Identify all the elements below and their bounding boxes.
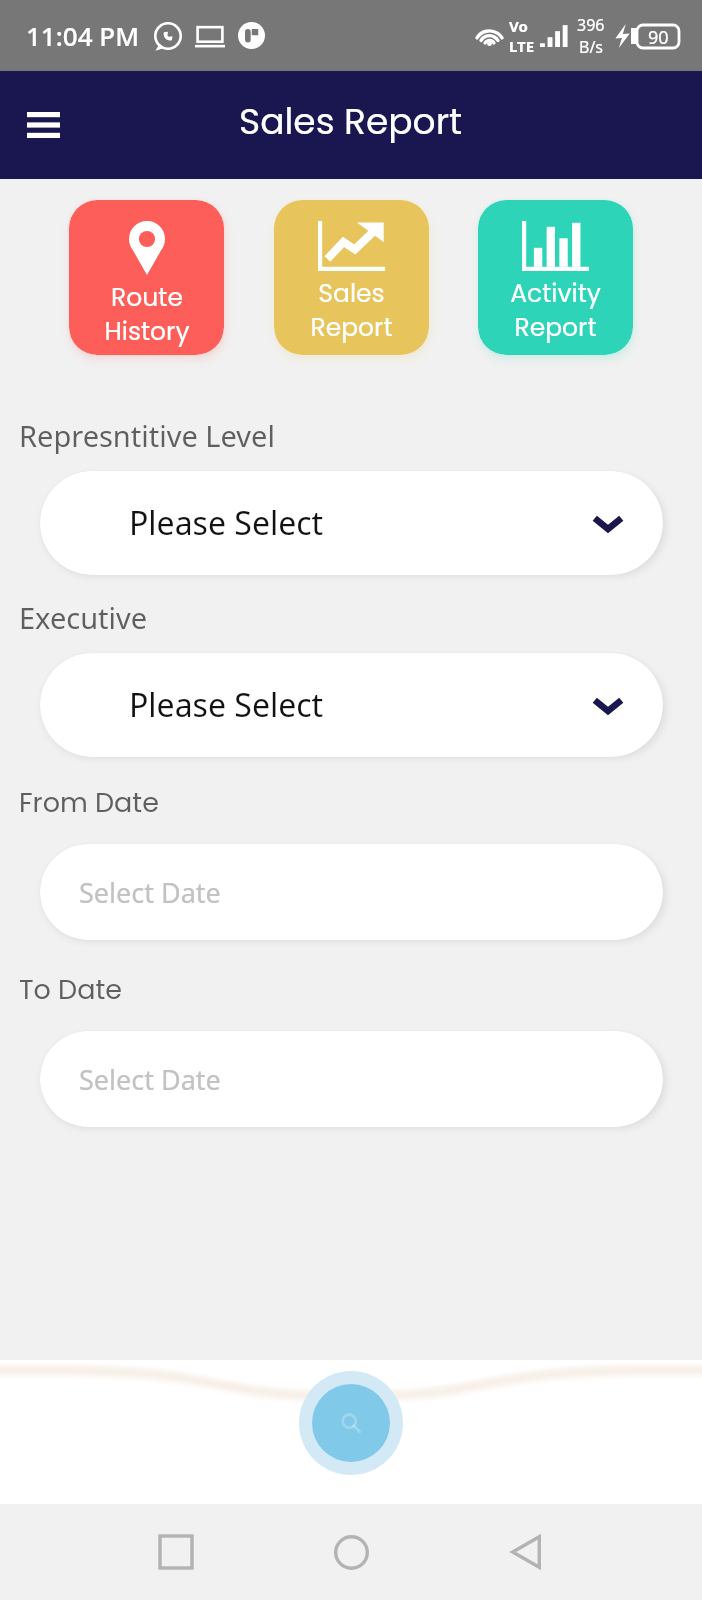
- staticText: 11:04 PM: [26, 18, 140, 53]
- button[interactable]: Please Select: [40, 653, 663, 757]
- staticText: Executive: [19, 598, 148, 637]
- staticText: Vo: [509, 16, 528, 36]
- button[interactable]: Route History: [69, 200, 224, 355]
- button[interactable]: Recent apps: [128, 1504, 224, 1600]
- staticText: Please Select: [129, 683, 324, 727]
- button[interactable]: Search: [299, 1371, 403, 1475]
- staticText: Represntitive Level: [19, 416, 275, 455]
- button[interactable]: Select Date: [40, 844, 663, 940]
- staticText: Activity Report: [510, 276, 601, 345]
- staticText: B/s: [579, 36, 604, 58]
- staticText: Select Date: [79, 874, 221, 911]
- staticText: Sales Report: [239, 96, 463, 146]
- button[interactable]: Please Select: [40, 471, 663, 575]
- button[interactable]: Open navigation menu: [14, 96, 72, 154]
- button[interactable]: Sales Report: [274, 200, 429, 355]
- staticText: Route History: [104, 280, 190, 349]
- staticText: 396: [577, 14, 605, 36]
- staticText: 90: [648, 25, 669, 48]
- button[interactable]: Home: [303, 1504, 399, 1600]
- staticText: From Date: [19, 784, 159, 822]
- button[interactable]: Back: [478, 1504, 574, 1600]
- staticText: Sales Report: [310, 276, 393, 345]
- button[interactable]: Activity Report: [478, 200, 633, 355]
- staticText: Select Date: [79, 1061, 221, 1098]
- button[interactable]: Select Date: [40, 1031, 663, 1127]
- staticText: Please Select: [129, 501, 324, 545]
- staticText: LTE: [509, 36, 535, 56]
- staticText: To Date: [19, 971, 123, 1009]
